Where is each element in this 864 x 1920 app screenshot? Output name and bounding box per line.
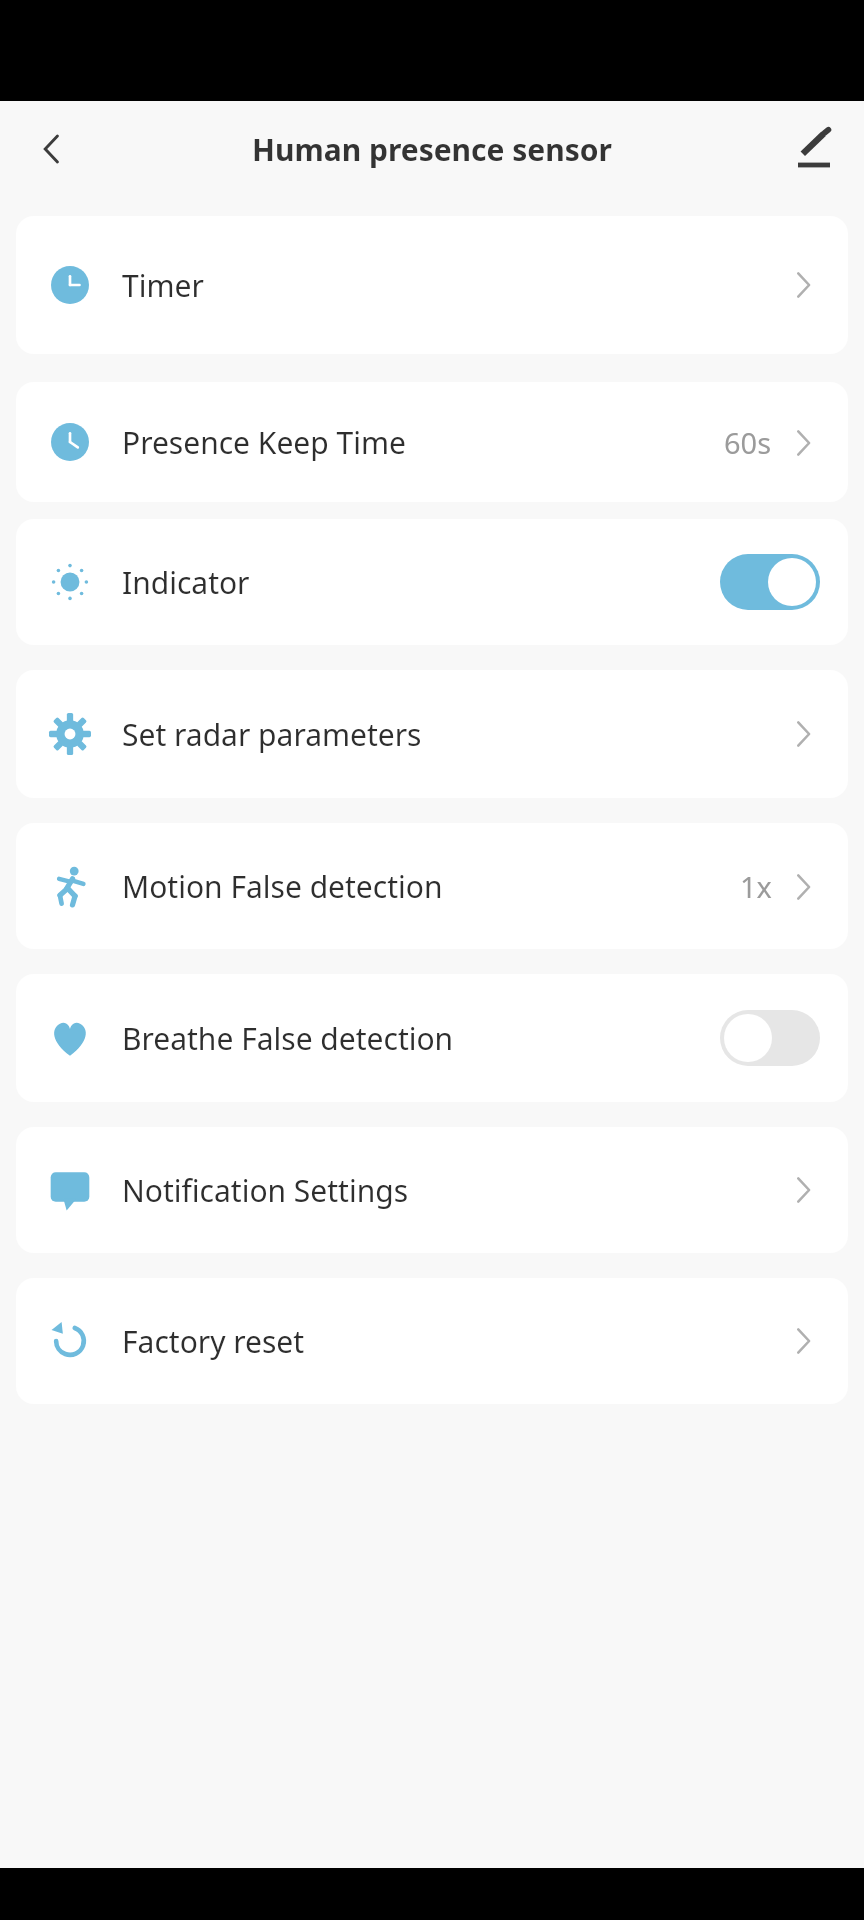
staticText: Human presence sensor bbox=[110, 129, 754, 170]
staticText: Indicator bbox=[122, 562, 720, 603]
button[interactable]: Breathe False detection bbox=[16, 974, 848, 1102]
button[interactable]: Toggle on bbox=[720, 554, 820, 610]
staticText: Motion False detection bbox=[122, 866, 740, 907]
button[interactable]: Factory reset bbox=[16, 1278, 848, 1404]
button[interactable]: Toggle off bbox=[720, 1010, 820, 1066]
button[interactable]: Back bbox=[20, 117, 84, 181]
staticText: Breathe False detection bbox=[122, 1018, 720, 1059]
button[interactable]: Set radar parameters bbox=[16, 670, 848, 798]
button[interactable]: Timer bbox=[16, 216, 848, 354]
staticText: Set radar parameters bbox=[122, 714, 786, 755]
button[interactable]: Presence Keep Time bbox=[16, 382, 848, 502]
button[interactable]: Notification Settings bbox=[16, 1127, 848, 1253]
staticText: Factory reset bbox=[122, 1321, 786, 1362]
button[interactable]: Edit bbox=[782, 117, 846, 181]
button[interactable]: Indicator bbox=[16, 519, 848, 645]
staticText: Presence Keep Time bbox=[122, 422, 724, 463]
staticText: Notification Settings bbox=[122, 1170, 786, 1211]
staticText: 1x bbox=[740, 867, 772, 906]
button[interactable]: Motion False detection bbox=[16, 823, 848, 949]
staticText: 60s bbox=[724, 423, 772, 462]
staticText: Timer bbox=[122, 265, 786, 306]
